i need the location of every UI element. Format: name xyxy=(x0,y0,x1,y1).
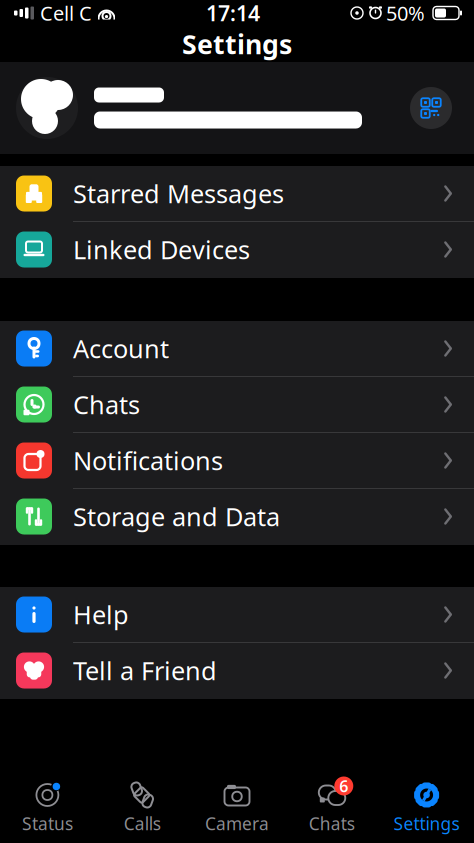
staticText: Cell C xyxy=(40,0,92,26)
button[interactable]: Account xyxy=(0,321,474,377)
staticText: Calls xyxy=(124,812,161,835)
button[interactable]: Calls xyxy=(95,780,190,836)
button[interactable]: Storage and Data xyxy=(0,489,474,545)
staticText: 50% xyxy=(386,0,425,26)
staticText: Chats xyxy=(73,388,140,421)
staticText: Camera xyxy=(205,812,269,835)
staticText: Notifications xyxy=(73,444,223,477)
button[interactable]: Chats xyxy=(0,377,474,433)
staticText: Storage and Data xyxy=(73,500,280,533)
button[interactable]: 6 xyxy=(284,780,379,836)
button[interactable]: Camera xyxy=(190,780,284,836)
staticText: 17:14 xyxy=(206,0,260,27)
button[interactable] xyxy=(0,62,474,154)
button[interactable]: Linked Devices xyxy=(0,222,474,278)
button[interactable]: Settings xyxy=(379,780,474,836)
staticText: Account xyxy=(73,332,169,365)
button[interactable]: Help xyxy=(0,587,474,643)
button[interactable]: Starred Messages xyxy=(0,166,474,222)
staticText: Settings xyxy=(182,26,292,62)
button[interactable]: Tell a Friend xyxy=(0,643,474,699)
staticText: Chats xyxy=(309,812,355,835)
staticText: Linked Devices xyxy=(73,233,250,266)
staticText: Help xyxy=(73,598,129,631)
button[interactable]: Status xyxy=(0,780,95,836)
staticText: Tell a Friend xyxy=(73,654,217,687)
staticText: Status xyxy=(22,812,73,835)
button[interactable]: My QR code xyxy=(410,87,452,129)
button[interactable]: Notifications xyxy=(0,433,474,489)
staticText: Settings xyxy=(394,812,460,835)
staticText: Starred Messages xyxy=(73,177,284,210)
staticText: 6 xyxy=(339,775,348,797)
